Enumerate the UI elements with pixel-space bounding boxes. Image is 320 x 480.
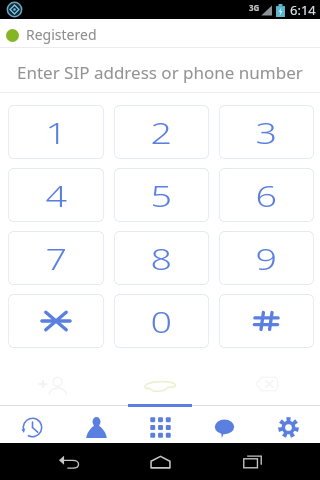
button[interactable]: Recents <box>0 404 64 443</box>
button[interactable] <box>219 294 314 348</box>
button[interactable]: Dialpad <box>128 404 192 443</box>
button[interactable]: Messages <box>192 404 256 443</box>
button[interactable]: 3 <box>219 105 314 159</box>
button[interactable]: 4 <box>8 168 104 222</box>
staticText: 0 <box>150 302 172 341</box>
staticText: 6 <box>255 176 277 215</box>
staticText: 4 <box>45 176 68 215</box>
button[interactable]: 6 <box>219 168 314 222</box>
button[interactable]: 1 <box>8 105 104 159</box>
button[interactable]: Settings <box>256 404 320 443</box>
button[interactable]: Contacts <box>64 404 128 443</box>
button[interactable]: 5 <box>114 168 209 222</box>
button[interactable]: Add to contacts <box>0 362 106 406</box>
button[interactable]: Backspace <box>213 362 320 406</box>
staticText: Enter SIP address or phone number <box>17 61 303 84</box>
staticText: 8 <box>150 239 172 278</box>
button[interactable]: 2 <box>114 105 209 159</box>
button[interactable]: Back <box>46 443 92 480</box>
staticText: 9 <box>255 239 277 278</box>
staticText: 7 <box>45 239 68 278</box>
button[interactable] <box>8 294 104 348</box>
staticText: 6:14 <box>290 1 316 19</box>
staticText: 2 <box>150 113 172 152</box>
staticText: 1 <box>45 113 68 152</box>
button[interactable]: 0 <box>114 294 209 348</box>
staticText: Registered <box>26 25 97 44</box>
staticText: 3 <box>255 113 277 152</box>
button[interactable]: 9 <box>219 231 314 285</box>
button[interactable]: Recent apps <box>229 443 275 480</box>
button[interactable]: 8 <box>114 231 209 285</box>
button[interactable]: Call <box>106 362 213 406</box>
staticText: 5 <box>150 176 172 215</box>
staticText: 3G <box>249 2 260 13</box>
button[interactable]: Home <box>137 443 183 480</box>
button[interactable]: 7 <box>8 231 104 285</box>
button[interactable]: Enter SIP address or phone number <box>0 50 320 95</box>
